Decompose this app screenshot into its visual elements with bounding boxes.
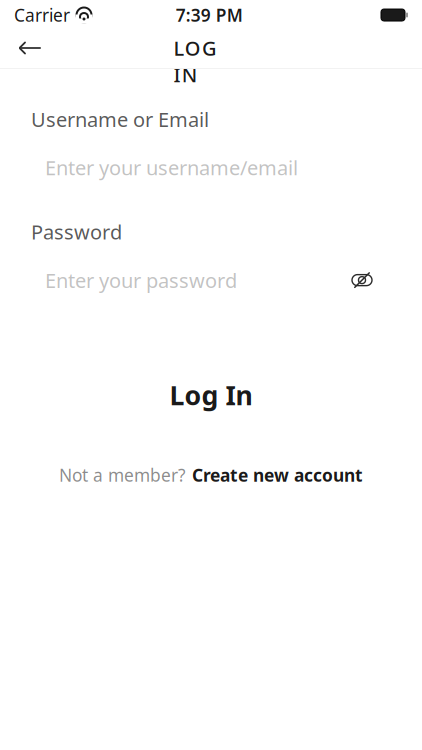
staticText: Create new account (192, 463, 363, 486)
staticText: Enter your username/email (45, 154, 298, 181)
staticText: Not a member? (59, 463, 186, 486)
button[interactable]: Not a member? (0, 453, 422, 496)
button[interactable]: Back (6, 28, 54, 68)
staticText: 7:39 PM (176, 3, 243, 26)
staticText: Enter your password (45, 267, 237, 293)
staticText: LOG IN (173, 35, 248, 61)
staticText: Log In (169, 377, 252, 412)
staticText: Password (31, 219, 122, 245)
staticText: Carrier (14, 3, 70, 26)
button[interactable]: Log In (0, 363, 422, 426)
button[interactable]: Show password (340, 262, 384, 298)
staticText: Username or Email (31, 106, 209, 133)
